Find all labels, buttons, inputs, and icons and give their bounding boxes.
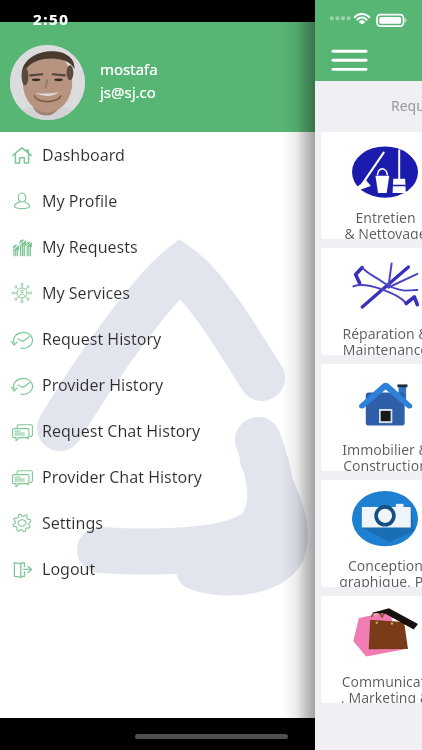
button[interactable]: Dashboard: [0, 132, 315, 178]
staticText: Logout: [42, 558, 96, 580]
staticText: Request Chat History: [42, 420, 201, 442]
staticText: Provider History: [42, 374, 164, 396]
button[interactable]: My Services: [0, 270, 315, 316]
staticText: Provider Chat History: [42, 466, 203, 488]
staticText: My Profile: [42, 190, 118, 212]
staticText: Entretien & Nettoyage: [344, 208, 422, 239]
button[interactable]: Provider Chat History: [0, 454, 315, 500]
staticText: 2:50: [33, 9, 70, 29]
button[interactable]: Settings: [0, 500, 315, 546]
staticText: Réparation & Maintenance: [342, 324, 422, 355]
button[interactable]: Immobilier & Construction: [321, 364, 422, 471]
button[interactable]: Communicati , Marketing &: [321, 596, 422, 703]
button[interactable]: Open navigation menu: [325, 42, 373, 78]
staticText: Requ: [391, 96, 422, 115]
staticText: My Services: [42, 282, 130, 304]
button[interactable]: Entretien & Nettoyage: [321, 132, 422, 239]
button[interactable]: My Profile: [0, 178, 315, 224]
staticText: Communicati , Marketing &: [341, 672, 422, 703]
staticText: js@sj.co: [100, 82, 156, 102]
button[interactable]: Request Chat History: [0, 408, 315, 454]
button[interactable]: Conception graphique, Ph: [321, 480, 422, 587]
button[interactable]: Réparation & Maintenance: [321, 248, 422, 355]
staticText: Immobilier & Construction: [342, 440, 422, 471]
button[interactable]: My Requests: [0, 224, 315, 270]
button[interactable]: Request History: [0, 316, 315, 362]
staticText: My Requests: [42, 236, 138, 258]
staticText: Request History: [42, 328, 162, 350]
staticText: mostafa: [100, 59, 158, 79]
staticText: Settings: [42, 512, 103, 534]
staticText: Dashboard: [42, 144, 125, 166]
staticText: Conception graphique, Ph: [339, 556, 422, 587]
button[interactable]: Logout: [0, 546, 315, 592]
button[interactable]: Provider History: [0, 362, 315, 408]
